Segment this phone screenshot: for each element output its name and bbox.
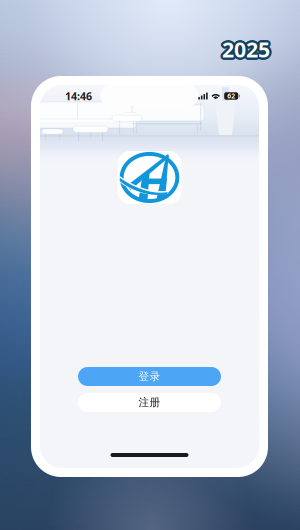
button[interactable]: 登录	[78, 367, 221, 386]
staticText: 2025	[222, 37, 270, 65]
staticText: 2025	[224, 35, 272, 63]
staticText: 2025	[220, 35, 268, 63]
staticText: 2025	[224, 36, 272, 64]
staticText: 2025	[224, 33, 272, 62]
staticText: 14:46	[65, 89, 92, 103]
staticText: 2025	[224, 37, 272, 65]
staticText: 登录	[138, 370, 160, 383]
staticText: 62	[227, 92, 235, 100]
staticText: 2025	[223, 37, 271, 65]
staticText: 2025	[220, 36, 268, 64]
staticText: 2025	[220, 37, 268, 65]
staticText: 2025	[221, 33, 269, 61]
staticText: 2025	[222, 33, 270, 61]
staticText: 2025	[222, 35, 270, 63]
button[interactable]: 注册	[78, 393, 221, 412]
staticText: 2025	[221, 37, 269, 65]
staticText: 2025	[224, 34, 272, 62]
staticText: 2025	[220, 33, 268, 62]
staticText: 注册	[138, 396, 160, 409]
staticText: 2025	[220, 34, 268, 62]
staticText: 2025	[223, 33, 271, 61]
